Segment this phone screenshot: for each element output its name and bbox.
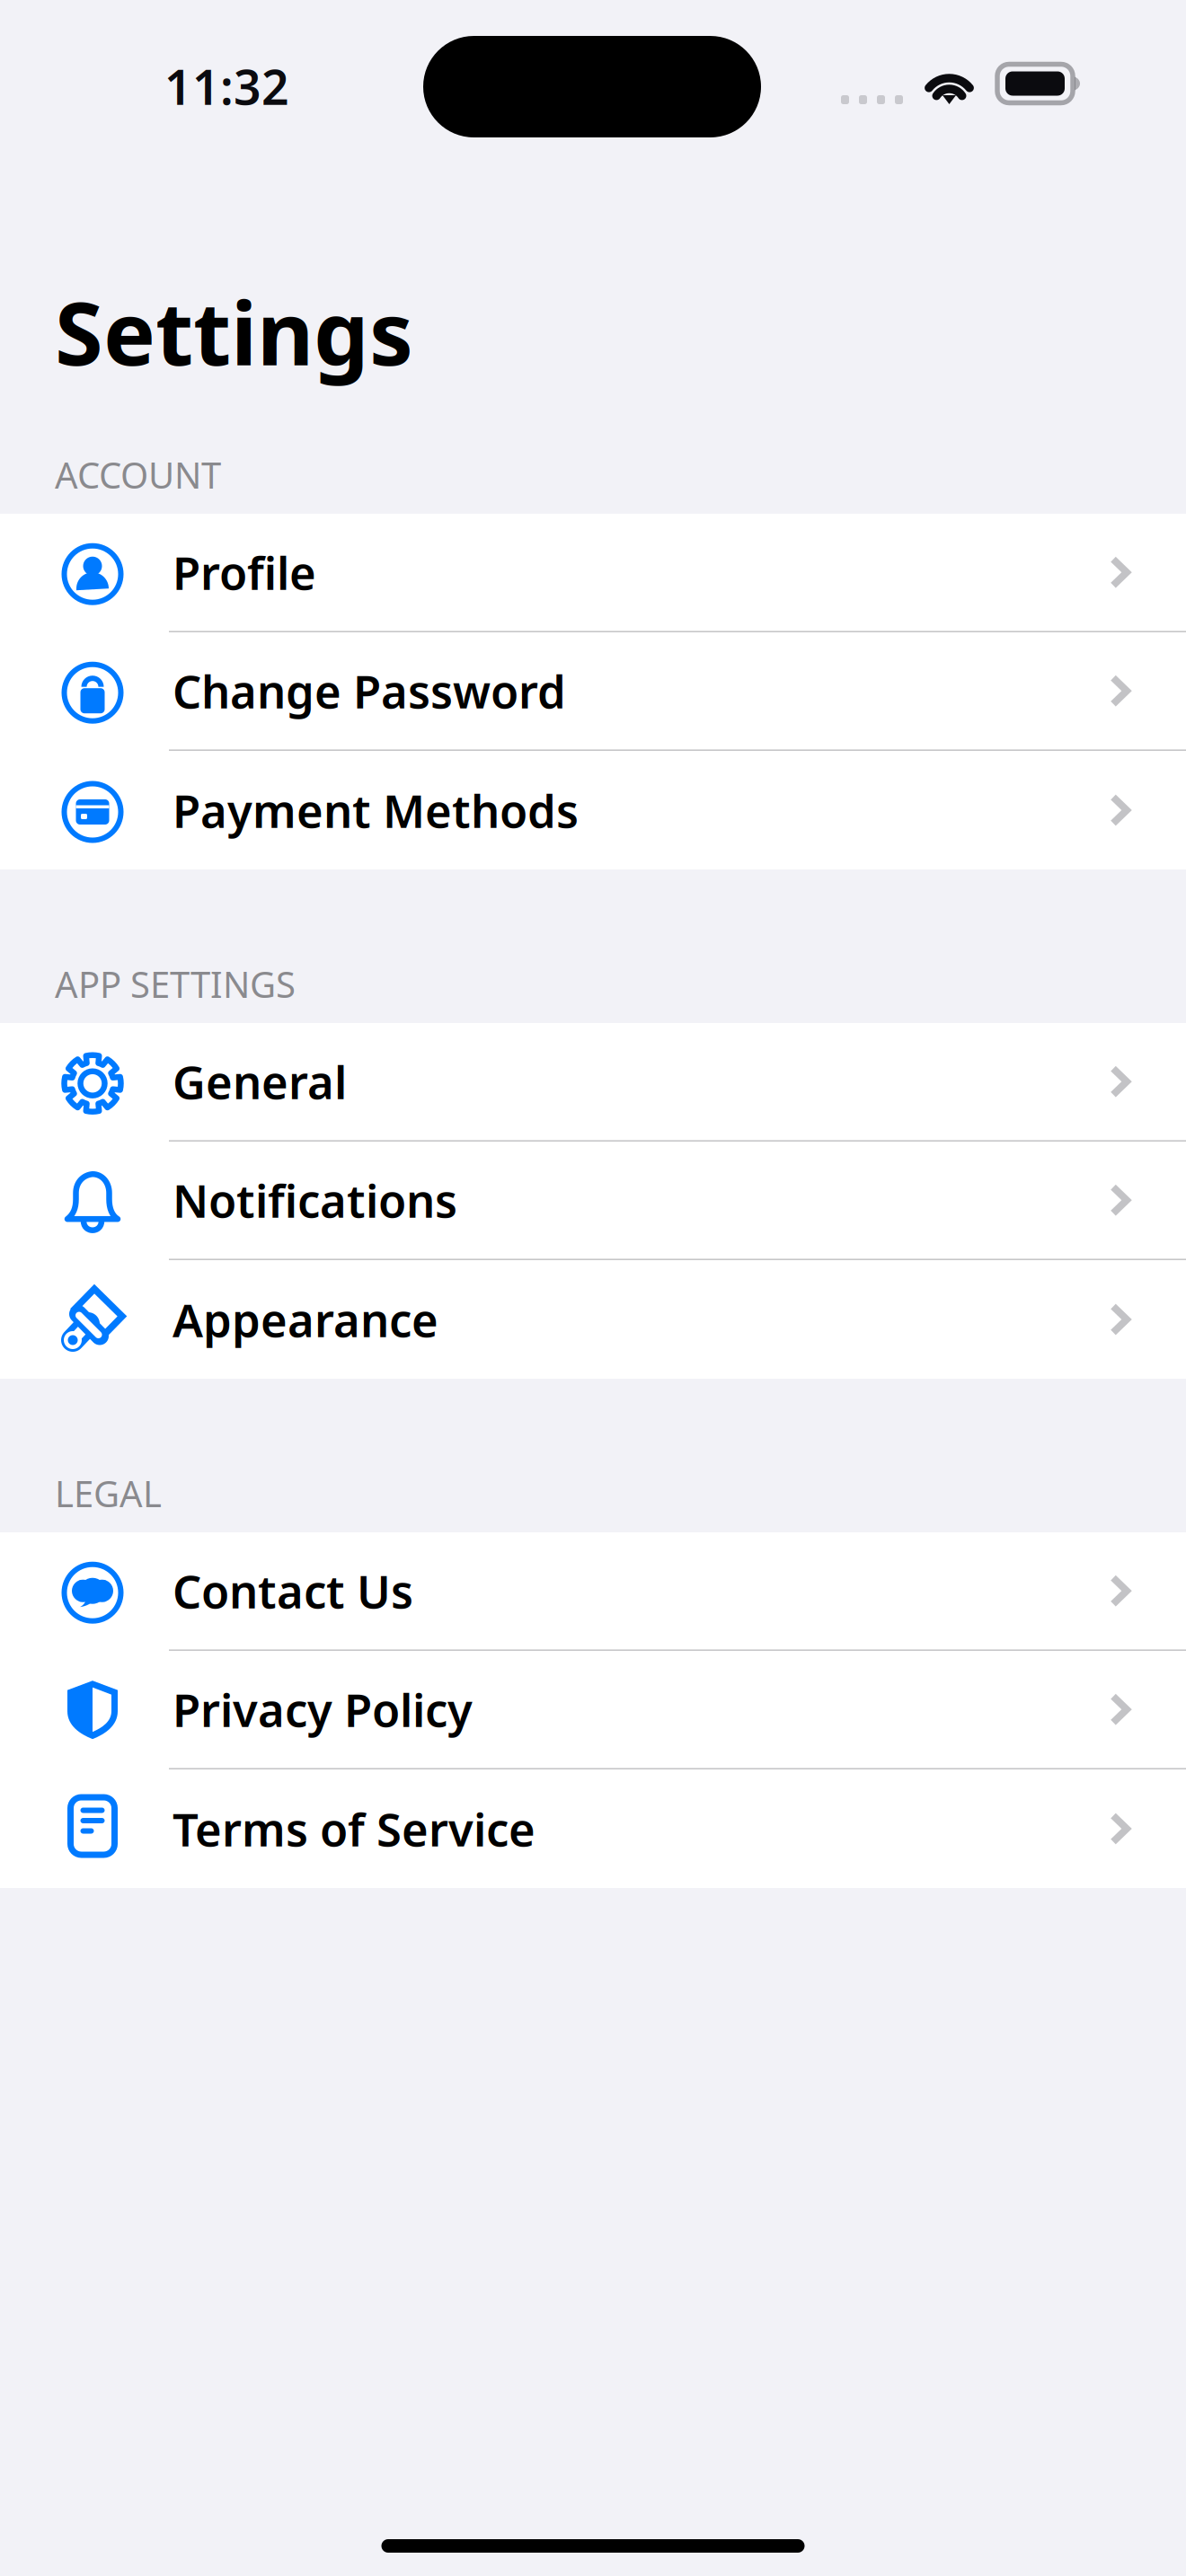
staticText: APP SETTINGS xyxy=(55,960,296,1008)
staticText: Payment Methods xyxy=(173,780,579,840)
staticText: Terms of Service xyxy=(173,1799,535,1859)
staticText: General xyxy=(173,1051,347,1112)
staticText: Profile xyxy=(173,542,316,603)
button[interactable]: Appearance xyxy=(0,1260,1186,1379)
button[interactable]: Terms of Service xyxy=(0,1769,1186,1888)
button[interactable]: Privacy Policy xyxy=(0,1651,1186,1769)
staticText: ACCOUNT xyxy=(55,451,221,498)
staticText: 11:32 xyxy=(164,54,289,118)
button[interactable]: Profile xyxy=(0,514,1186,632)
button[interactable]: Notifications xyxy=(0,1142,1186,1260)
staticText: Privacy Policy xyxy=(173,1679,473,1740)
staticText: LEGAL xyxy=(55,1469,162,1517)
staticText: Appearance xyxy=(173,1289,438,1350)
button[interactable]: Payment Methods xyxy=(0,751,1186,869)
staticText: Settings xyxy=(55,273,413,390)
button[interactable]: Contact Us xyxy=(0,1532,1186,1651)
staticText: Notifications xyxy=(173,1170,457,1230)
staticText: Change Password xyxy=(173,661,566,721)
button[interactable]: General xyxy=(0,1023,1186,1142)
staticText: Contact Us xyxy=(173,1561,413,1621)
button[interactable]: Change Password xyxy=(0,632,1186,751)
